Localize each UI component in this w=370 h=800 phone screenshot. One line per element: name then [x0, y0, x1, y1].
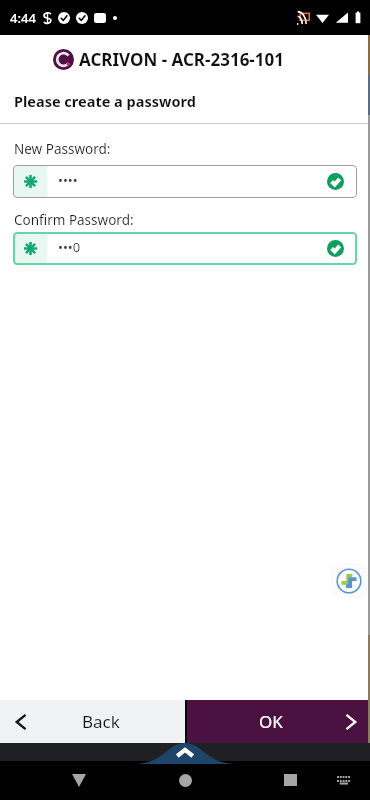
staticText: OK — [259, 710, 283, 733]
staticText: •••0 — [58, 238, 327, 256]
staticText: •••• — [58, 171, 327, 189]
staticText: Confirm Password: — [14, 211, 134, 229]
button[interactable]: •••0 — [13, 232, 357, 265]
button[interactable]: Home — [169, 764, 201, 796]
staticText: ACRIVON - ACR-2316-101 — [79, 48, 284, 71]
button[interactable]: Back — [0, 700, 185, 743]
staticText: New Password: — [14, 140, 111, 158]
button[interactable]: OK — [187, 700, 370, 743]
staticText: 4:44 — [10, 9, 36, 27]
button[interactable]: Accessibility assistant — [331, 563, 367, 599]
button[interactable]: Switch keyboard — [328, 764, 360, 796]
staticText: Please create a password — [14, 91, 196, 111]
button[interactable]: •••• — [13, 165, 357, 198]
staticText: Back — [82, 710, 120, 733]
button[interactable]: Recent apps — [274, 764, 306, 796]
button[interactable]: Hide keyboard — [63, 764, 95, 796]
